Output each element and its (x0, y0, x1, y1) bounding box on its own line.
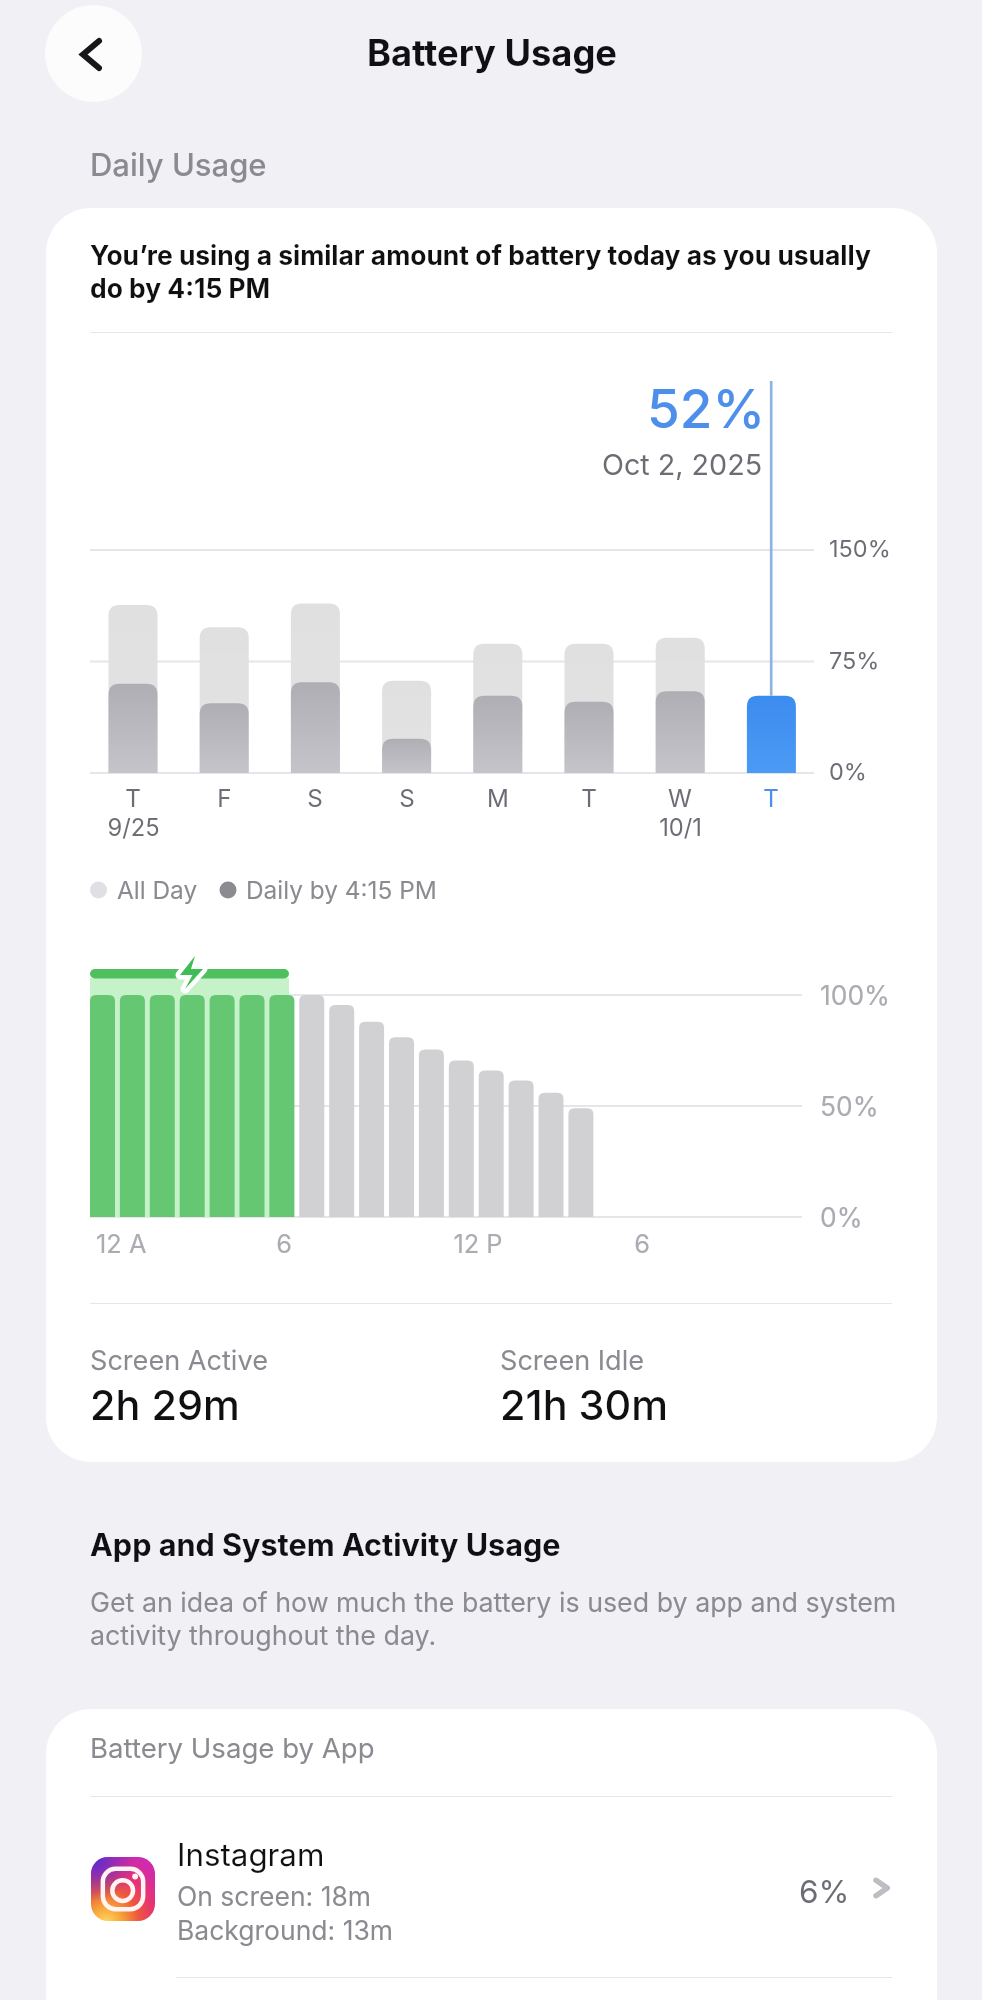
staticText: S (399, 784, 415, 813)
staticText: 150% (829, 534, 891, 562)
staticText: 0% (829, 757, 867, 785)
staticText: Background: 13m (177, 1914, 393, 1946)
staticText: 10/1 (659, 813, 702, 842)
staticText: S (307, 784, 323, 813)
staticText: Oct 2, 2025 (602, 447, 763, 482)
staticText: 100% (820, 979, 890, 1011)
staticText: 6% (799, 1872, 850, 1910)
staticText: M (487, 784, 509, 813)
staticText: On screen: 18m (177, 1880, 372, 1912)
staticText: T (125, 784, 141, 813)
button[interactable]: Instagram (46, 1810, 937, 1977)
staticText: 52% (647, 377, 766, 441)
staticText: Screen Idle (500, 1344, 645, 1377)
staticText: App and System Activity Usage (90, 1526, 561, 1563)
button[interactable]: Back (45, 5, 142, 102)
staticText: 6 (634, 1228, 650, 1259)
staticText: 75% (829, 646, 880, 674)
staticText: You’re using a similar amount of battery… (90, 239, 892, 304)
staticText: 6 (276, 1228, 292, 1259)
staticText: 50% (820, 1090, 879, 1122)
staticText: T (581, 784, 597, 813)
staticText: 9/25 (107, 813, 160, 842)
staticText: Get an idea of how much the battery is u… (90, 1586, 900, 1652)
staticText: 12 A (96, 1228, 147, 1259)
staticText: Screen Active (90, 1344, 268, 1377)
staticText: 0% (820, 1201, 863, 1233)
staticText: Instagram (177, 1836, 325, 1874)
staticText: All Day (117, 875, 198, 905)
staticText: Battery Usage (367, 31, 617, 75)
staticText: 21h 30m (500, 1380, 669, 1430)
staticText: W (668, 784, 692, 813)
staticText: 12 P (453, 1228, 503, 1259)
staticText: Battery Usage by App (90, 1731, 375, 1764)
staticText: 2h 29m (90, 1380, 240, 1430)
staticText: Daily by 4:15 PM (246, 875, 437, 905)
staticText: F (217, 784, 232, 813)
staticText: Daily Usage (90, 146, 267, 184)
staticText: T (763, 784, 779, 813)
